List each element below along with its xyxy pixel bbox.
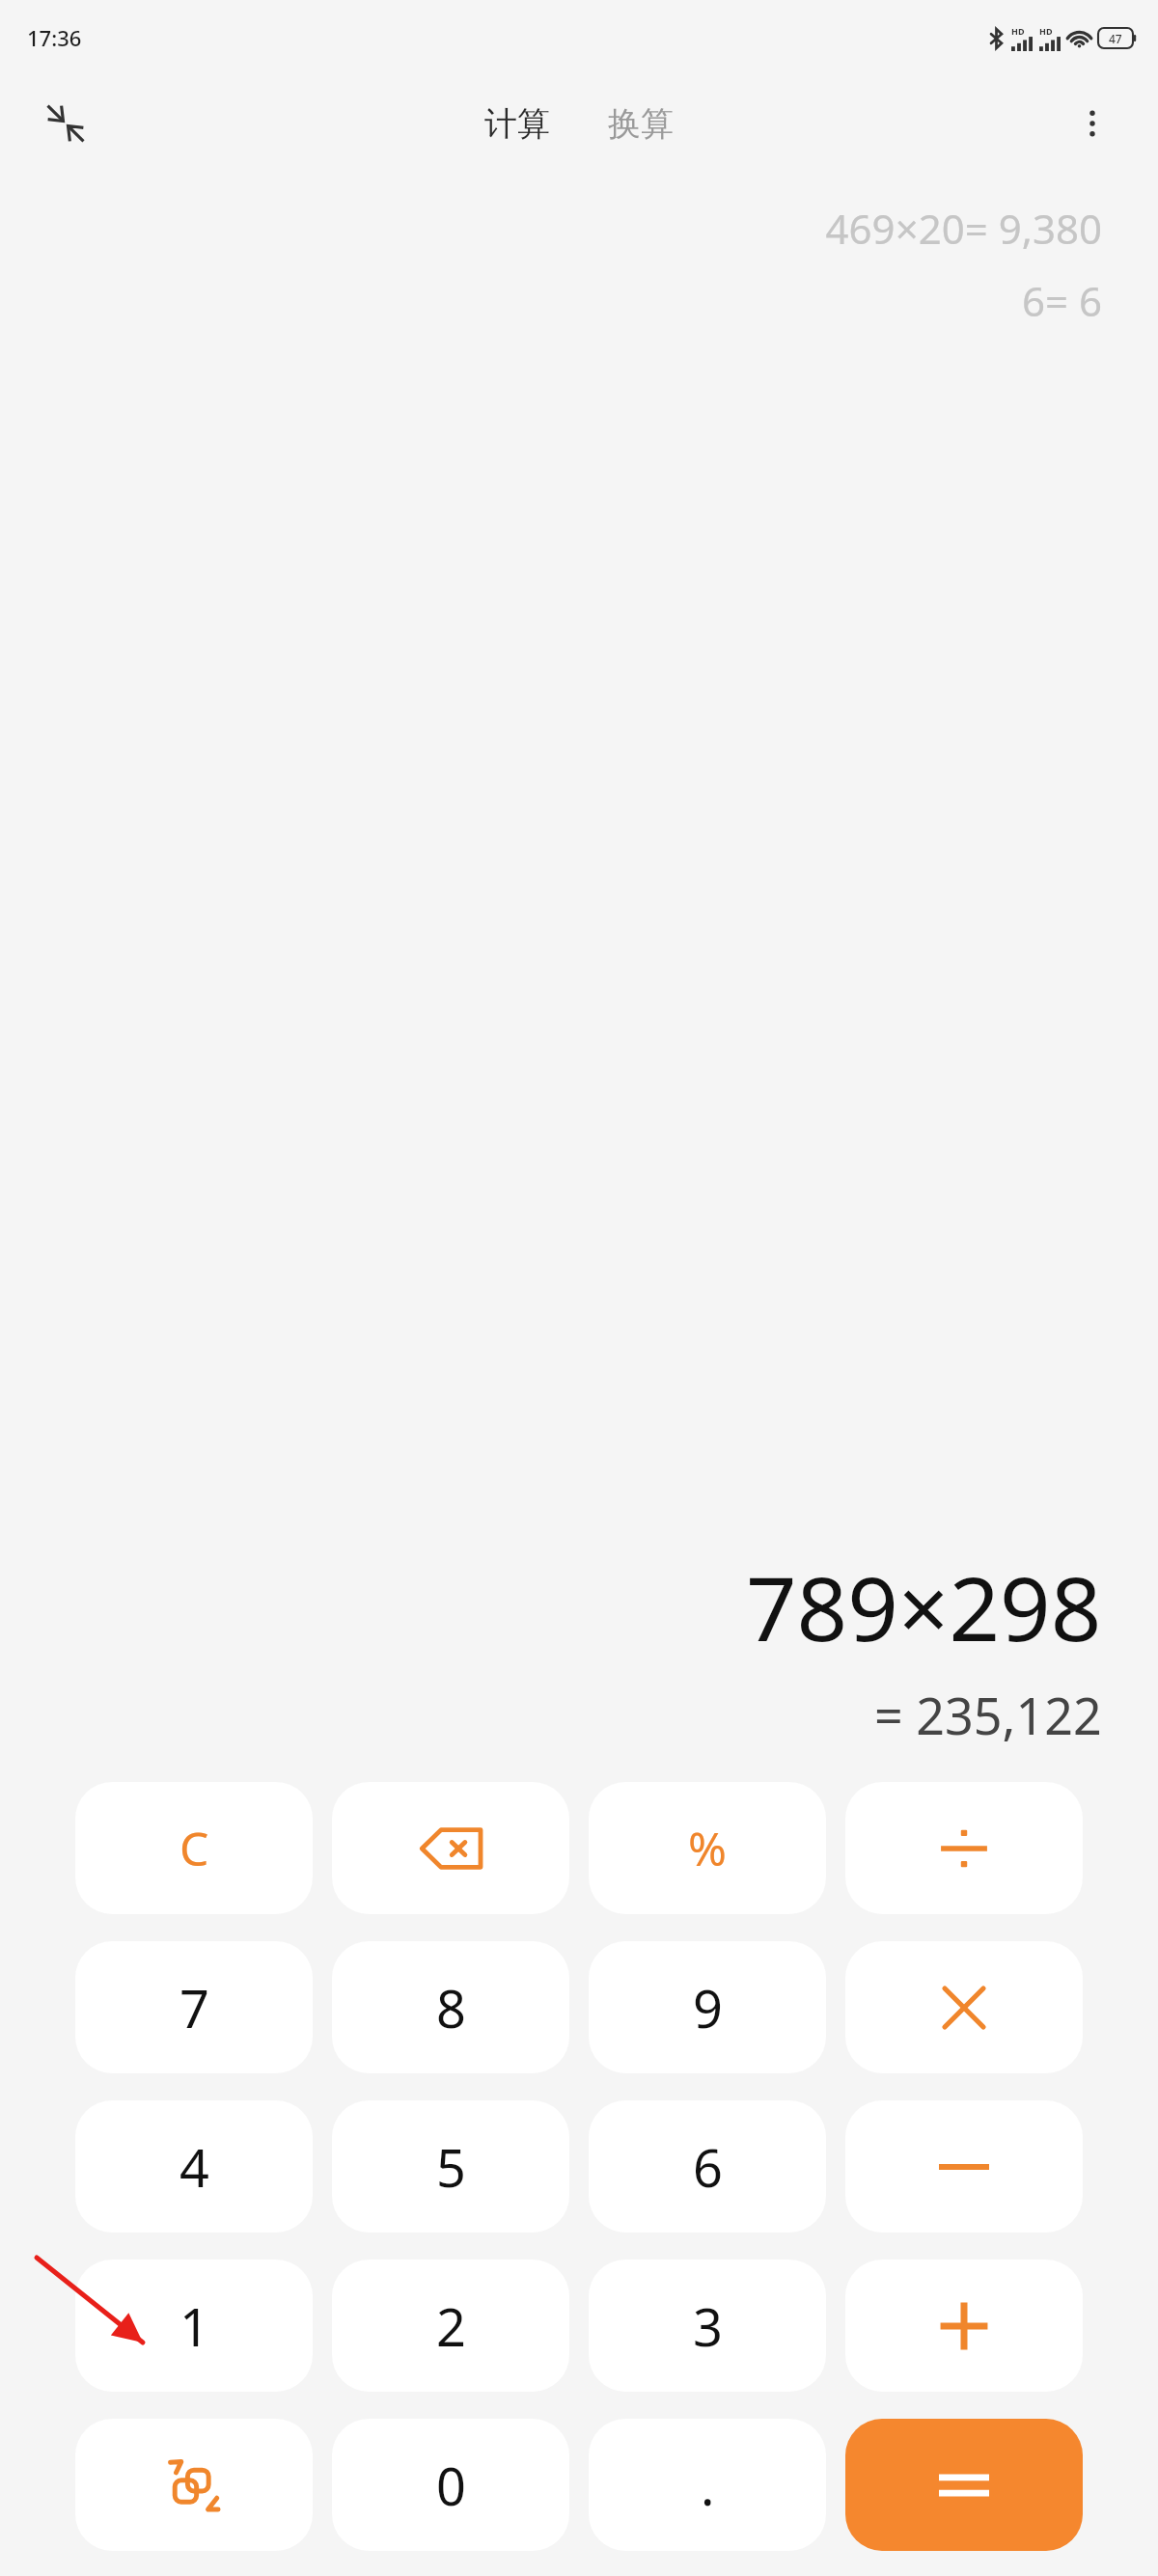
- staticText: 6: [693, 2131, 723, 2203]
- button[interactable]: Unit conversion: [75, 2419, 313, 2551]
- staticText: 1: [179, 2290, 209, 2362]
- staticText: 789×298: [746, 1547, 1102, 1667]
- staticText: 469×20= 9,380: [825, 201, 1102, 256]
- button[interactable]: .: [589, 2419, 826, 2551]
- staticText: 4: [179, 2131, 209, 2203]
- button[interactable]: 2: [332, 2260, 569, 2392]
- staticText: 2: [436, 2290, 466, 2362]
- staticText: 3: [693, 2290, 723, 2362]
- button[interactable]: Divide: [845, 1782, 1083, 1914]
- button[interactable]: 8: [332, 1941, 569, 2073]
- staticText: 5: [436, 2131, 466, 2203]
- staticText: HD: [1011, 25, 1025, 37]
- button[interactable]: 7: [75, 1941, 313, 2073]
- button[interactable]: 计算: [473, 97, 562, 151]
- button[interactable]: 5: [332, 2100, 569, 2233]
- button[interactable]: Clear: [75, 1782, 313, 1914]
- button[interactable]: Subtract: [845, 2100, 1083, 2233]
- staticText: 0: [436, 2450, 466, 2521]
- staticText: %: [688, 1817, 727, 1879]
- button[interactable]: 9: [589, 1941, 826, 2073]
- staticText: 17:36: [27, 23, 82, 52]
- button[interactable]: Collapse: [37, 95, 95, 152]
- button[interactable]: 3: [589, 2260, 826, 2392]
- button[interactable]: Multiply: [845, 1941, 1083, 2073]
- staticText: 计算: [484, 103, 550, 145]
- staticText: C: [179, 1817, 209, 1879]
- staticText: 9: [693, 1972, 723, 2043]
- staticText: 7: [179, 1972, 209, 2043]
- button[interactable]: 6: [589, 2100, 826, 2233]
- staticText: 47: [1109, 31, 1122, 46]
- button[interactable]: 1: [75, 2260, 313, 2392]
- button[interactable]: Percent: [589, 1782, 826, 1914]
- button[interactable]: Backspace: [332, 1782, 569, 1914]
- staticText: = 235,122: [874, 1681, 1102, 1749]
- staticText: 换算: [608, 103, 674, 145]
- staticText: 6= 6: [1022, 273, 1102, 328]
- staticText: .: [701, 2450, 715, 2521]
- button[interactable]: Equals: [845, 2419, 1083, 2551]
- staticText: HD: [1039, 25, 1053, 37]
- button[interactable]: 4: [75, 2100, 313, 2233]
- staticText: 8: [436, 1972, 466, 2043]
- button[interactable]: More options: [1063, 95, 1121, 152]
- button[interactable]: 0: [332, 2419, 569, 2551]
- button[interactable]: Add: [845, 2260, 1083, 2392]
- button[interactable]: 换算: [596, 97, 685, 151]
